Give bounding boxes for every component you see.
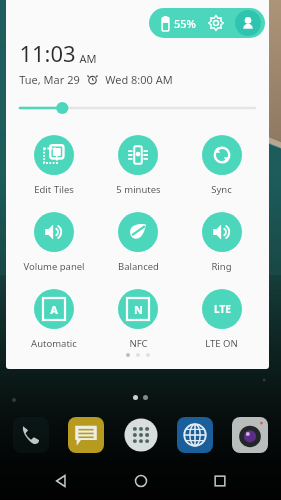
button[interactable]: Home xyxy=(122,462,160,500)
button[interactable]: 5 minutes xyxy=(96,133,180,198)
button[interactable]: Edit Tiles xyxy=(12,133,96,198)
staticText: Balanced xyxy=(118,260,159,273)
button[interactable]: Balanced xyxy=(96,210,180,275)
button[interactable]: Ring xyxy=(180,210,263,275)
button[interactable]: Browser xyxy=(174,414,216,456)
button[interactable]: Apps xyxy=(120,414,162,456)
staticText: Volume panel xyxy=(23,260,85,273)
button[interactable]: Recents xyxy=(201,462,239,500)
button[interactable]: A xyxy=(12,287,96,352)
button[interactable]: Phone xyxy=(10,414,52,456)
staticText: 11:03 xyxy=(19,38,76,68)
staticText: Ring xyxy=(211,260,232,273)
button[interactable]: User xyxy=(235,10,261,36)
button[interactable]: Volume panel xyxy=(12,210,96,275)
staticText: N xyxy=(134,302,143,317)
staticText: 5 minutes xyxy=(116,183,161,196)
staticText: Sync xyxy=(211,183,232,196)
staticText: LTE xyxy=(214,302,231,316)
button[interactable]: Back xyxy=(42,462,80,500)
button[interactable]: Messages xyxy=(65,414,107,456)
staticText: Edit Tiles xyxy=(34,183,74,196)
button[interactable]: 55% xyxy=(149,8,265,38)
button[interactable]: Sync xyxy=(180,133,263,198)
button[interactable] xyxy=(20,99,255,117)
staticText: Automatic xyxy=(31,337,77,350)
button[interactable]: Camera xyxy=(229,414,271,456)
staticText: AM xyxy=(79,51,97,66)
staticText: Wed 8:00 AM xyxy=(105,72,173,87)
button[interactable]: Settings xyxy=(206,13,226,33)
button[interactable]: N xyxy=(96,287,180,352)
staticText: NFC xyxy=(129,337,148,350)
staticText: 55% xyxy=(174,16,196,31)
staticText: A xyxy=(50,302,58,317)
staticText: Tue, Mar 29 xyxy=(19,72,80,87)
button[interactable]: LTE xyxy=(180,287,263,352)
staticText: LTE ON xyxy=(205,337,238,350)
